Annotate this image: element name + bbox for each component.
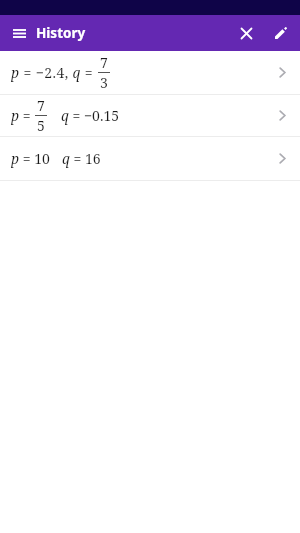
staticText: 5 <box>37 116 45 135</box>
staticText: q = −0.15 <box>61 106 120 125</box>
button[interactable]: p = <box>0 95 300 137</box>
staticText: 7 <box>100 53 108 72</box>
button[interactable] <box>234 21 258 45</box>
staticText: 7 <box>37 96 45 115</box>
button[interactable]: p = −2.4, q = <box>0 51 300 95</box>
button[interactable] <box>269 21 293 45</box>
button[interactable]: p = 10 <box>0 137 300 181</box>
staticText: History <box>36 24 86 42</box>
staticText: p = 10 <box>11 149 50 168</box>
staticText: p = −2.4, q = <box>11 63 98 82</box>
button[interactable] <box>7 21 31 45</box>
staticText: 3 <box>100 73 108 92</box>
staticText: p = <box>11 106 35 125</box>
staticText: q = 16 <box>62 149 101 168</box>
